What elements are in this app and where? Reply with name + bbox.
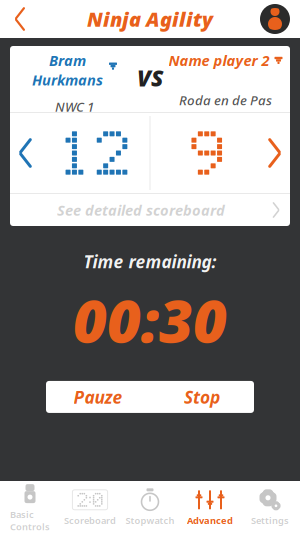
staticText: Time remaining: [83,250,216,273]
staticText: Pauze [73,385,122,408]
staticText: Stop [184,385,220,408]
button[interactable]: Back [0,1,40,37]
staticText: Advanced [187,514,233,527]
button[interactable]: Name player 2 [168,51,282,70]
staticText: Hurkmans [32,70,103,90]
staticText: 00:30 [73,281,227,359]
button[interactable]: Basic Controls [0,477,60,533]
button[interactable]: Bram [32,51,117,90]
staticText: VS [137,63,163,93]
button[interactable]: Stopwatch [120,483,180,531]
button[interactable]: Profile [260,4,300,34]
button[interactable]: Pauze [46,381,150,413]
button[interactable]: Advanced [180,483,240,531]
staticText: Scoreboard [64,514,116,527]
button[interactable]: See detailed scoreboard [10,194,290,226]
button[interactable]: Scoreboard [60,483,120,531]
staticText: Roda en de Pas [179,91,272,109]
staticText: Basic Controls [10,508,50,533]
staticText: Bram [49,51,86,70]
staticText: Stopwatch [125,514,174,527]
button[interactable]: Settings [240,483,300,531]
staticText: Name player 2 [168,51,269,70]
staticText: NWC 1 [55,98,94,115]
button[interactable]: Stop [150,381,254,413]
staticText: Ninja Agility [87,6,213,32]
button[interactable]: Decrease score [10,138,37,168]
button[interactable]: Increase score [263,138,290,168]
staticText: Settings [251,514,289,527]
staticText: See detailed scoreboard [57,200,225,220]
